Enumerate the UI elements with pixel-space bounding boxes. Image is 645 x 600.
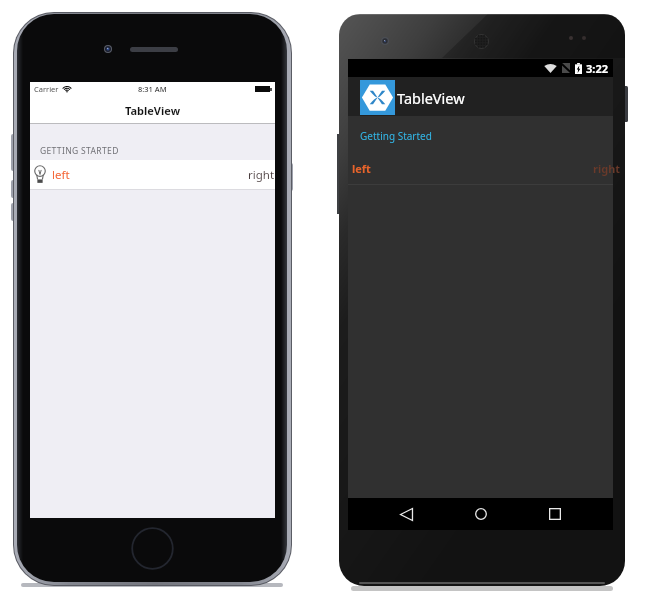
staticText: TableView [125, 103, 181, 118]
staticText: Carrier [34, 84, 59, 94]
button[interactable]: Back [388, 498, 425, 530]
staticText: Getting Started [360, 129, 432, 143]
staticText: GETTING STARTED [40, 145, 119, 157]
staticText: 3:22 [586, 61, 608, 76]
staticText: left [352, 161, 371, 176]
button[interactable]: Recents [536, 498, 573, 530]
staticText: right [593, 161, 621, 176]
button[interactable]: Getting Started [348, 116, 613, 155]
button[interactable]: left [348, 155, 613, 184]
button[interactable]: left [30, 160, 275, 189]
staticText: right [248, 167, 275, 183]
staticText: TableView [397, 88, 465, 108]
staticText: 8:31 AM [138, 84, 167, 94]
button[interactable]: Home [462, 498, 499, 530]
staticText: left [52, 167, 70, 183]
